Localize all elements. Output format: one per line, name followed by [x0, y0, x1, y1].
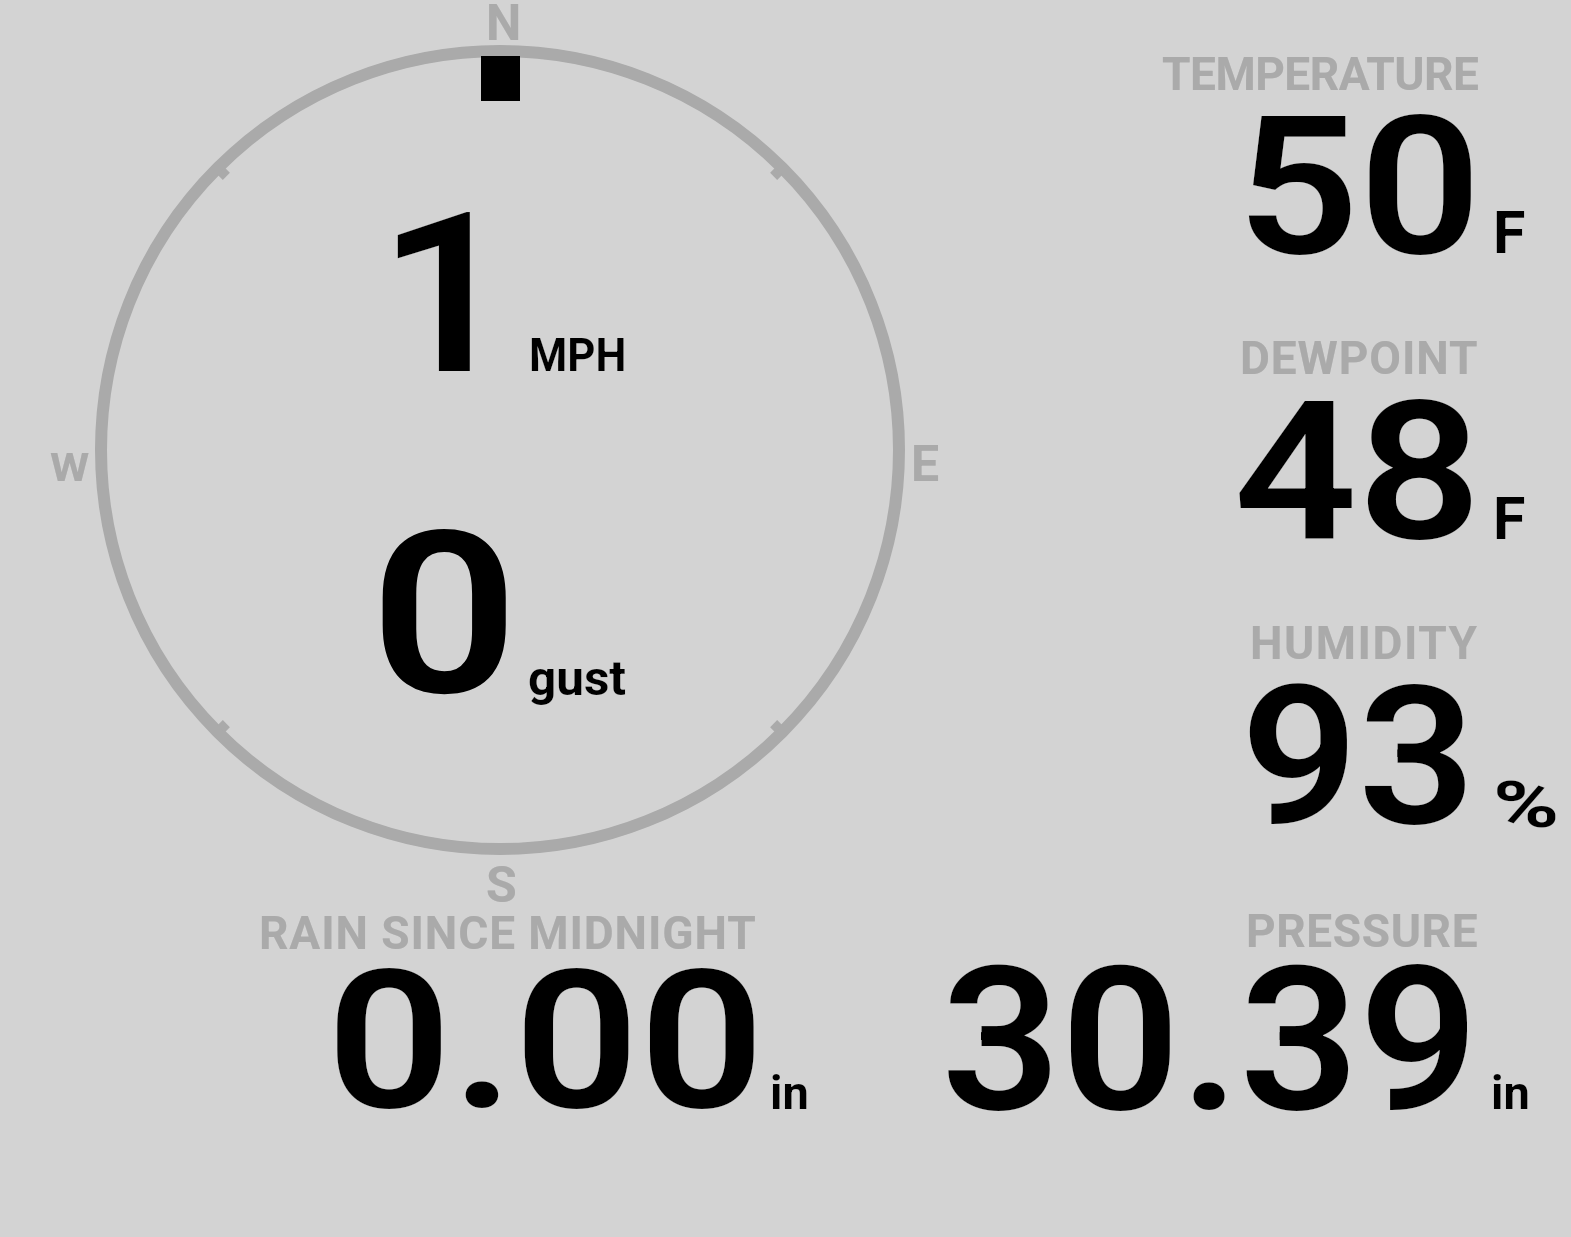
- staticText: E: [911, 435, 940, 494]
- staticText: %: [1493, 768, 1560, 843]
- button[interactable]: Dewpoint 48 degrees Fahrenheit: [1140, 325, 1560, 560]
- staticText: gust: [528, 650, 627, 706]
- staticText: DEWPOINT: [1240, 331, 1479, 385]
- staticText: F: [1493, 198, 1526, 267]
- staticText: S: [486, 856, 517, 915]
- staticText: 1: [378, 165, 515, 425]
- staticText: HUMIDITY: [1250, 616, 1479, 670]
- button[interactable]: Rain since midnight 0.00 inches: [235, 900, 825, 1125]
- staticText: in: [1491, 1065, 1530, 1120]
- staticText: N: [486, 0, 522, 53]
- staticText: 30.39: [941, 923, 1479, 1159]
- button[interactable]: Wind 1 miles per hour from the north, gu…: [100, 50, 900, 850]
- staticText: PRESSURE: [1246, 904, 1479, 958]
- staticText: in: [770, 1065, 809, 1120]
- button[interactable]: Humidity 93 percent: [1140, 610, 1560, 845]
- staticText: 0: [370, 482, 519, 747]
- staticText: W: [50, 446, 90, 491]
- staticText: 93: [1241, 644, 1476, 870]
- staticText: RAIN SINCE MIDNIGHT: [259, 906, 757, 960]
- staticText: 50: [1237, 74, 1482, 300]
- button[interactable]: Temperature 50 degrees Fahrenheit: [1140, 40, 1560, 275]
- staticText: 48: [1234, 359, 1482, 585]
- button[interactable]: Pressure 30.39 inches of mercury: [930, 900, 1540, 1125]
- staticText: TEMPERATURE: [1162, 47, 1479, 101]
- staticText: F: [1493, 484, 1526, 553]
- staticText: 0.00: [326, 928, 765, 1154]
- staticText: MPH: [529, 328, 627, 382]
